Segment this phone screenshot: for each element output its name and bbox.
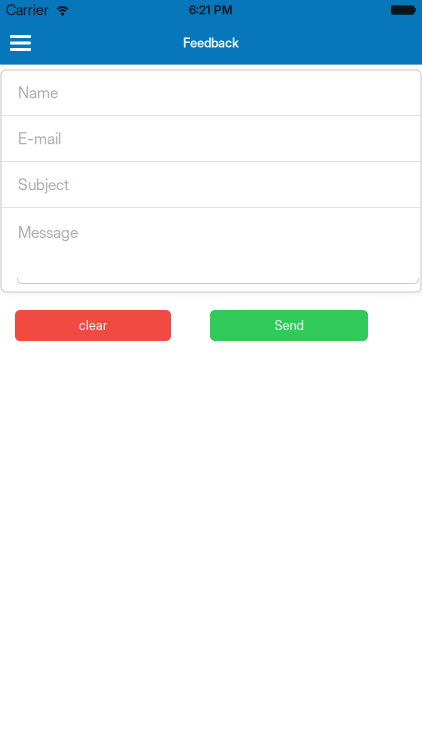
button[interactable]: Send	[210, 310, 368, 341]
staticText: Carrier	[6, 1, 49, 19]
staticText: Message	[18, 223, 78, 242]
staticText: clear	[79, 318, 107, 333]
staticText: Name	[18, 83, 58, 102]
staticText: Feedback	[183, 35, 239, 51]
button[interactable]: clear	[15, 310, 171, 341]
staticText: Send	[274, 318, 303, 333]
staticText: E-mail	[18, 129, 61, 148]
staticText: Subject	[18, 175, 69, 194]
staticText: 6:21 PM	[189, 3, 233, 17]
button[interactable]: Menu	[0, 26, 31, 58]
